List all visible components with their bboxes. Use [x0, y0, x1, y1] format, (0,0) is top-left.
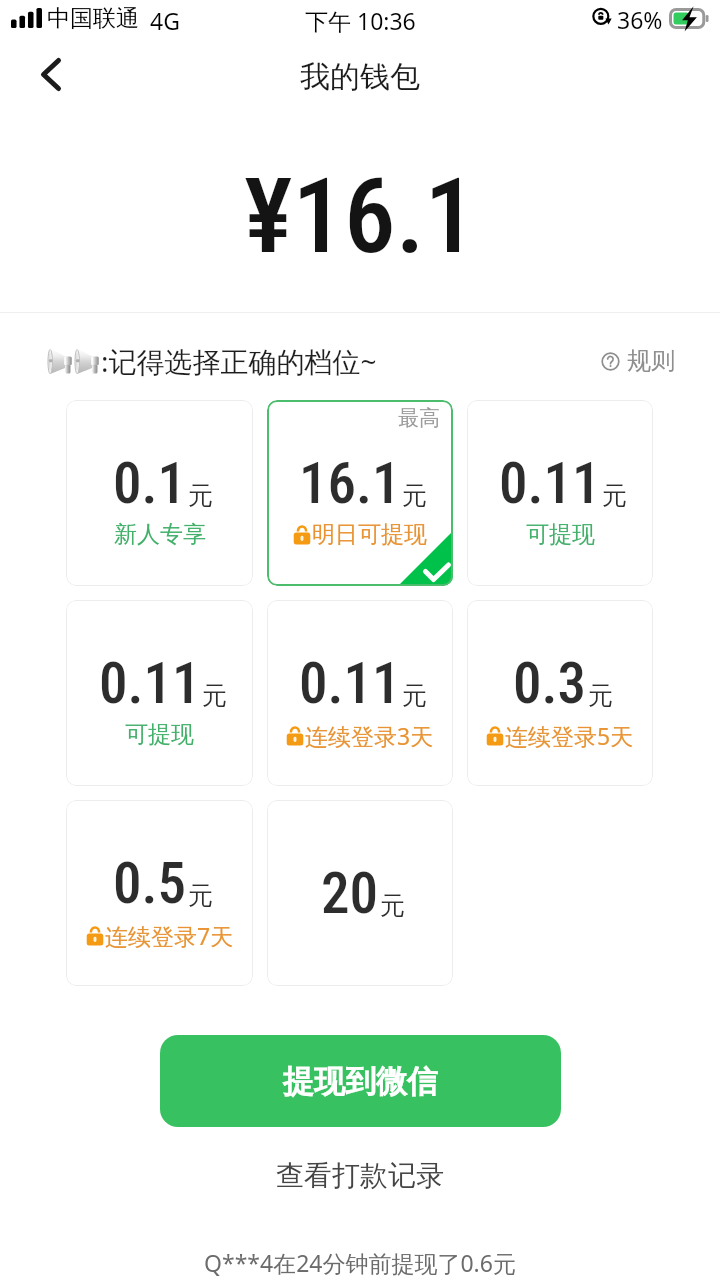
staticText: 新人专享 — [114, 520, 206, 549]
staticText: 0.1 — [113, 450, 187, 517]
staticText: :记得选择正确的档位~ — [101, 342, 377, 380]
staticText: 36% — [617, 4, 663, 35]
staticText: 明日可提现 — [312, 520, 427, 549]
staticText: 可提现 — [526, 520, 595, 549]
staticText: ¥16.1 — [244, 156, 477, 277]
button[interactable]: 0.11 — [467, 400, 653, 586]
staticText: 连续登录5天 — [505, 720, 634, 751]
staticText: 元 — [380, 890, 405, 921]
staticText: 元 — [602, 480, 627, 511]
staticText: 最高 — [398, 405, 440, 431]
staticText: 元 — [402, 480, 427, 511]
staticText: 16.1 — [299, 450, 401, 517]
button[interactable]: 规则 — [601, 346, 675, 376]
button[interactable]: 0.1 — [66, 400, 253, 586]
button[interactable]: 0.11 — [267, 600, 453, 786]
button[interactable]: 0.11 — [66, 600, 253, 786]
button[interactable]: 提现到微信 — [160, 1035, 561, 1127]
staticText: 元 — [402, 680, 427, 711]
button[interactable]: 返回 — [26, 49, 76, 99]
staticText: 0.11 — [99, 650, 201, 717]
staticText: 提现到微信 — [283, 1062, 438, 1101]
button[interactable]: 0.3 — [467, 600, 653, 786]
staticText: 0.5 — [113, 850, 187, 917]
button[interactable]: 20 — [267, 800, 453, 986]
button[interactable]: 最高 — [267, 400, 453, 586]
staticText: 中国联通 — [47, 4, 139, 33]
staticText: 元 — [202, 680, 227, 711]
staticText: 4G — [150, 5, 180, 36]
staticText: 0.11 — [499, 450, 601, 517]
staticText: 元 — [188, 480, 213, 511]
staticText: 我的钱包 — [300, 58, 420, 96]
button[interactable]: 0.5 — [66, 800, 253, 986]
staticText: 20 — [321, 860, 379, 927]
staticText: 连续登录3天 — [305, 720, 434, 751]
staticText: 元 — [188, 880, 213, 911]
staticText: 0.3 — [513, 650, 587, 717]
staticText: Q***4在24分钟前提现了0.6元 — [204, 1247, 516, 1278]
staticText: 元 — [588, 680, 613, 711]
staticText: 0.11 — [299, 650, 401, 717]
staticText: 规则 — [627, 346, 675, 376]
staticText: 下午 10:36 — [305, 5, 416, 36]
staticText: 可提现 — [125, 720, 194, 749]
button[interactable]: 查看打款记录 — [276, 1158, 444, 1193]
staticText: 连续登录7天 — [105, 920, 234, 951]
